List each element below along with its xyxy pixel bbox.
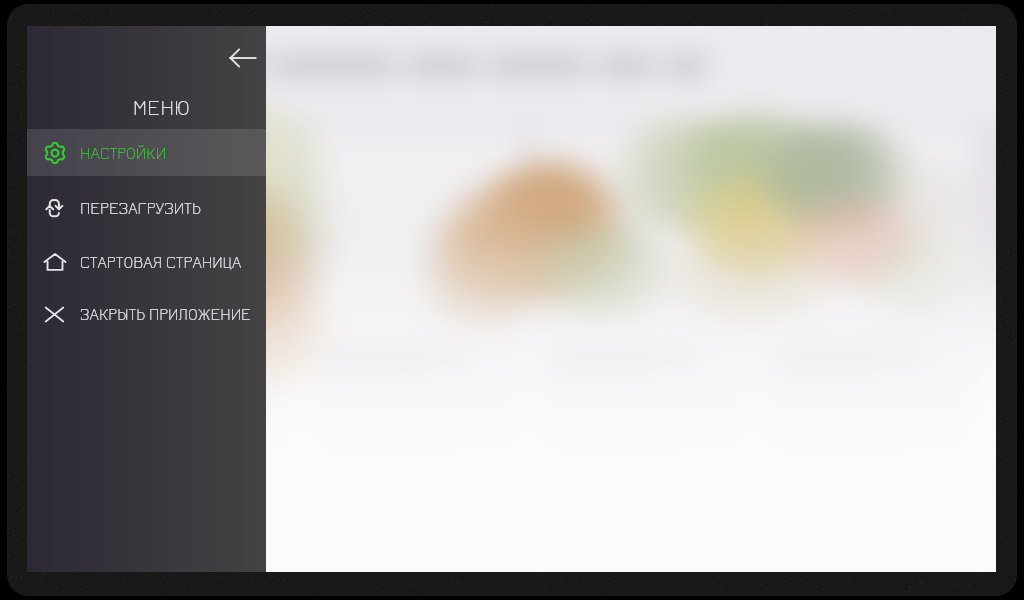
button[interactable]: НАСТРОЙКИ: [27, 129, 266, 176]
staticText: ЗАКРЫТЬ ПРИЛОЖЕНИЕ: [80, 304, 251, 324]
staticText: СТАРТОВАЯ СТРАНИЦА: [80, 252, 242, 272]
staticText: ПЕРЕЗАГРУЗИТЬ: [80, 198, 201, 218]
button[interactable]: СТАРТОВАЯ СТРАНИЦА: [27, 235, 266, 289]
staticText: НАСТРОЙКИ: [80, 143, 167, 163]
staticText: МЕНЮ: [133, 94, 191, 120]
button[interactable]: ЗАКРЫТЬ ПРИЛОЖЕНИЕ: [27, 288, 266, 340]
button[interactable]: ПЕРЕЗАГРУЗИТЬ: [27, 181, 266, 235]
button[interactable]: Back: [222, 37, 264, 79]
